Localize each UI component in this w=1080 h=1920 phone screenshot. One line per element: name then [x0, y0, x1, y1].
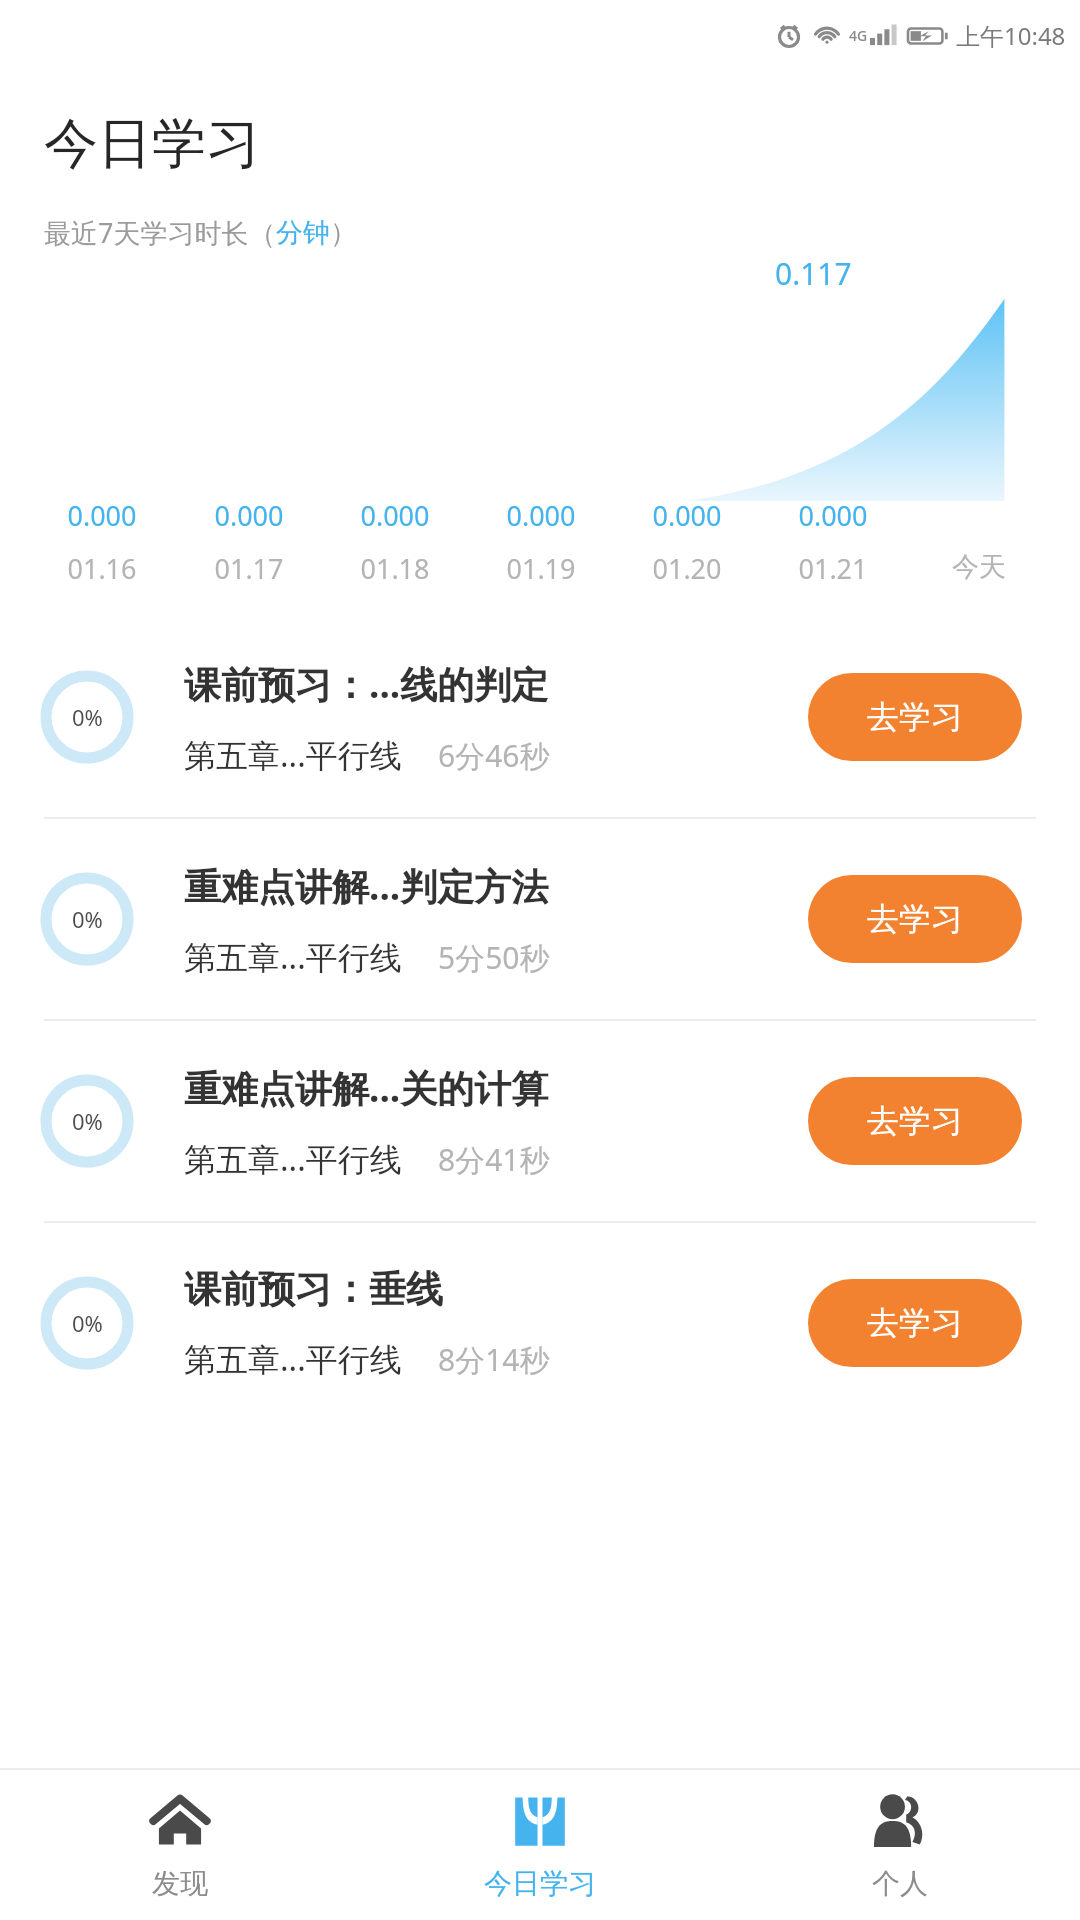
staticText: 4G [849, 26, 868, 45]
staticText: 0% [72, 1308, 103, 1338]
staticText: 5分50秒 [438, 937, 550, 978]
staticText: 去学习 [867, 899, 963, 939]
staticText: 0% [72, 1106, 103, 1136]
button[interactable]: 今日学习 [360, 1770, 720, 1920]
other: 今日学习 [509, 1790, 571, 1852]
staticText: 01.18 [360, 550, 430, 587]
button[interactable]: 0% [0, 617, 1080, 817]
staticText: 发现 [152, 1866, 208, 1901]
staticText: 0.000 [798, 497, 868, 534]
staticText: 课前预习：...线的判定 [184, 658, 549, 709]
staticText: 去学习 [867, 697, 963, 737]
staticText: 第五章...平行线 [184, 1337, 402, 1381]
button[interactable]: 去学习 [808, 1279, 1022, 1367]
staticText: 01.21 [798, 550, 868, 587]
staticText: 重难点讲解...判定方法 [184, 860, 549, 911]
staticText: 第五章...平行线 [184, 1137, 402, 1181]
other: 发现 [149, 1790, 211, 1852]
staticText: 最近7天学习时长（ [44, 214, 276, 251]
staticText: 分钟 [276, 216, 330, 250]
other: 个人 [869, 1790, 931, 1852]
staticText: 0.000 [652, 497, 722, 534]
staticText: 重难点讲解...关的计算 [184, 1062, 549, 1113]
button[interactable]: 个人 [720, 1770, 1080, 1920]
staticText: 个人 [872, 1866, 928, 1901]
staticText: 去学习 [867, 1101, 963, 1141]
staticText: 01.20 [652, 550, 722, 587]
staticText: 01.17 [214, 550, 284, 587]
staticText: 今日学习 [484, 1866, 596, 1901]
button[interactable]: 0% [0, 1223, 1080, 1423]
staticText: 今天 [952, 550, 1006, 584]
staticText: 0% [72, 904, 103, 934]
staticText: 8分14秒 [438, 1339, 550, 1380]
button[interactable]: 0% [0, 819, 1080, 1019]
staticText: 0.000 [506, 497, 576, 534]
button[interactable]: 发现 [0, 1770, 360, 1920]
button[interactable]: 0% [0, 1021, 1080, 1221]
staticText: 01.16 [67, 550, 137, 587]
staticText: 0.117 [775, 253, 852, 294]
staticText: 今日学习 [44, 110, 260, 178]
staticText: 上午10:48 [956, 19, 1066, 52]
button[interactable]: 去学习 [808, 875, 1022, 963]
staticText: 0.000 [214, 497, 284, 534]
staticText: 第五章...平行线 [184, 733, 402, 777]
staticText: ） [330, 216, 357, 250]
staticText: 第五章...平行线 [184, 935, 402, 979]
staticText: 01.19 [506, 550, 576, 587]
staticText: 6分46秒 [438, 735, 550, 776]
staticText: 0.000 [67, 497, 137, 534]
staticText: 课前预习：垂线 [184, 1266, 443, 1313]
staticText: 0% [72, 702, 103, 732]
staticText: 0.000 [360, 497, 430, 534]
button[interactable]: 去学习 [808, 673, 1022, 761]
button[interactable]: 去学习 [808, 1077, 1022, 1165]
staticText: 8分41秒 [438, 1139, 550, 1180]
staticText: 去学习 [867, 1303, 963, 1343]
